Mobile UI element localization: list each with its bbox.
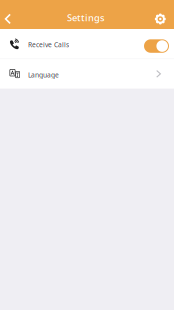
button[interactable]: Settings: [152, 8, 169, 30]
staticText: Receive Calls: [28, 40, 69, 49]
staticText: Language: [28, 70, 59, 79]
button[interactable]: Language: [0, 59, 174, 89]
button[interactable]: Back: [0, 8, 15, 30]
staticText: Settings: [67, 11, 105, 24]
button[interactable]: Receive Calls: [0, 29, 174, 58]
